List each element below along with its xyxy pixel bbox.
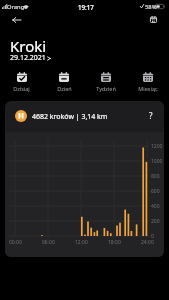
staticText: 4682 kroków | 3,14 km <box>32 112 108 122</box>
button[interactable]: Dzisiaj <box>0 72 43 92</box>
staticText: 19:17 <box>78 3 94 11</box>
button[interactable]: Help <box>144 109 157 122</box>
staticText: 06:00 <box>42 239 55 246</box>
staticText: 58% <box>145 3 157 11</box>
staticText: 400 <box>151 203 160 210</box>
staticText: Dzisiaj <box>13 85 30 92</box>
button[interactable]: 29.12.2021 <box>10 53 51 63</box>
button[interactable]: Back <box>6 12 26 27</box>
button[interactable]: Calendar <box>146 12 161 27</box>
staticText: 29.12.2021 <box>10 53 46 63</box>
button[interactable]: Miesiąc <box>127 72 169 92</box>
staticText: 18:00 <box>108 239 121 246</box>
staticText: Tydzień <box>96 85 116 92</box>
staticText: Dzień <box>57 85 72 92</box>
staticText: 800 <box>151 173 160 180</box>
staticText: 0 <box>151 233 154 240</box>
staticText: 00:00 <box>9 239 22 246</box>
staticText: Miesiąc <box>138 85 158 92</box>
staticText: 1200 <box>151 143 163 150</box>
staticText: 1000 <box>151 158 163 165</box>
staticText: Kroki <box>10 36 47 56</box>
staticText: 600 <box>151 188 160 195</box>
staticText: 12:00 <box>75 239 88 246</box>
button[interactable]: Dzień <box>43 72 85 92</box>
button[interactable]: Tydzień <box>85 72 127 92</box>
staticText: ? <box>149 110 153 121</box>
staticText: 200 <box>151 218 160 225</box>
staticText: Orange <box>7 3 28 11</box>
staticText: 24:00 <box>141 239 154 246</box>
